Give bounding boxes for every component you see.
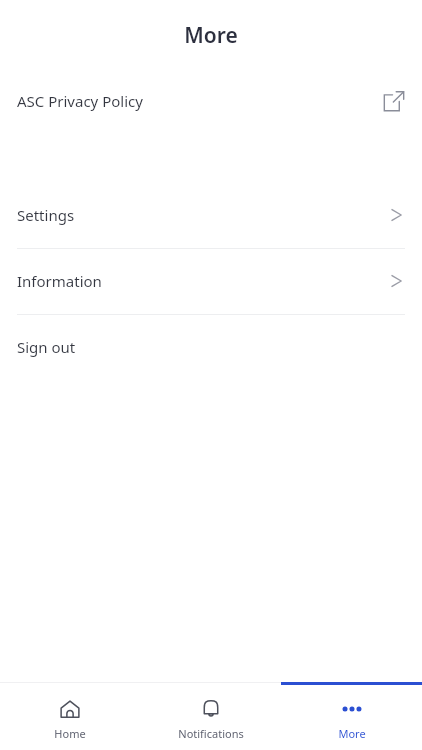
- staticText: Notifications: [178, 726, 244, 741]
- button[interactable]: ASC Privacy Policy: [0, 77, 422, 125]
- button[interactable]: More: [281, 682, 422, 750]
- staticText: ASC Privacy Policy: [17, 91, 143, 111]
- staticText: More: [184, 21, 238, 50]
- button[interactable]: Notifications: [140, 682, 281, 750]
- button[interactable]: Sign out: [0, 325, 422, 369]
- other: Open external link: [383, 90, 405, 112]
- staticText: More: [338, 726, 366, 741]
- staticText: Sign out: [17, 337, 76, 357]
- staticText: Information: [17, 271, 102, 291]
- staticText: Settings: [17, 205, 75, 225]
- button[interactable]: Settings: [0, 193, 422, 237]
- button[interactable]: Home: [0, 682, 140, 750]
- button[interactable]: Information: [0, 259, 422, 303]
- staticText: Home: [54, 726, 86, 741]
